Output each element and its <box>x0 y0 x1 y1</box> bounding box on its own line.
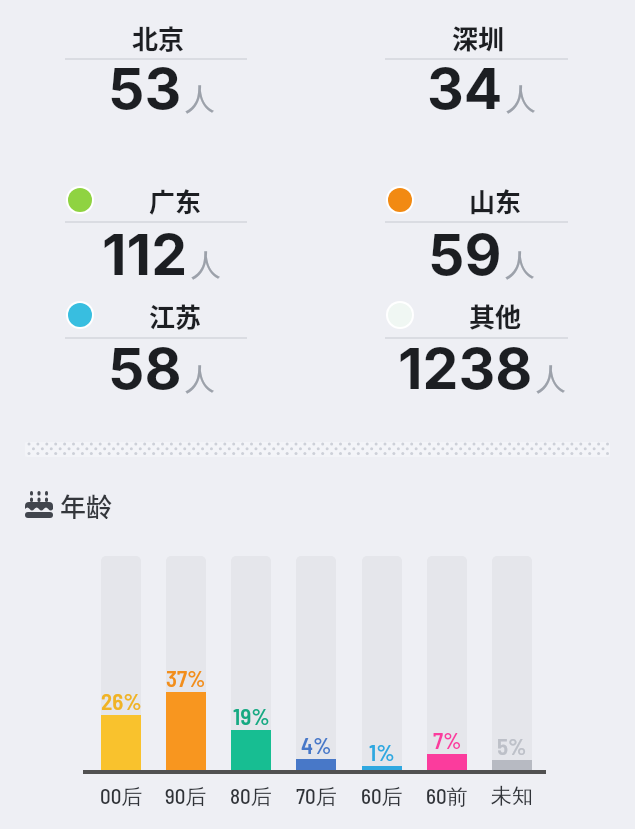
button[interactable]: 未知 <box>479 782 545 810</box>
staticText: 人 <box>506 80 536 118</box>
staticText: 53 <box>108 54 182 123</box>
staticText: 人 <box>185 360 215 398</box>
staticText: 37% <box>166 664 206 692</box>
button[interactable]: 江苏 <box>84 297 266 333</box>
button[interactable]: 山东 <box>404 182 587 218</box>
button[interactable]: 年龄 <box>60 487 120 519</box>
staticText: 58 <box>108 334 182 403</box>
button[interactable]: 70后 <box>283 782 349 810</box>
staticText: 00后 <box>100 783 143 810</box>
staticText: 5% <box>497 732 527 760</box>
button[interactable]: 广东 <box>84 182 266 218</box>
button[interactable]: 80后 <box>218 782 284 810</box>
staticText: 年龄 <box>60 487 113 519</box>
staticText: 59 <box>428 220 502 289</box>
button[interactable]: 深圳 <box>387 19 570 55</box>
staticText: 人 <box>536 360 566 398</box>
button[interactable]: 00后 <box>88 782 154 810</box>
staticText: 90后 <box>165 783 207 810</box>
staticText: 人 <box>185 80 215 118</box>
staticText: 19% <box>233 702 270 730</box>
staticText: 26% <box>101 687 142 715</box>
button[interactable]: 其他 <box>404 297 587 333</box>
staticText: 北京 <box>132 19 185 55</box>
staticText: 其他 <box>469 297 522 333</box>
staticText: 60后 <box>361 783 403 810</box>
button[interactable]: 60后 <box>349 782 415 810</box>
button[interactable]: 60前 <box>414 782 480 810</box>
staticText: 70后 <box>296 783 337 810</box>
staticText: 江苏 <box>149 297 202 333</box>
staticText: 人 <box>191 246 221 284</box>
staticText: 1238 <box>398 334 533 403</box>
staticText: 广东 <box>149 182 202 218</box>
staticText: 80后 <box>230 783 272 810</box>
staticText: 山东 <box>469 182 522 218</box>
staticText: 1% <box>369 738 395 766</box>
staticText: 112 <box>102 220 188 289</box>
staticText: 4% <box>301 731 332 759</box>
button[interactable]: 90后 <box>153 782 219 810</box>
staticText: 人 <box>505 246 535 284</box>
staticText: 深圳 <box>452 19 505 55</box>
staticText: 7% <box>433 726 462 754</box>
button[interactable]: 北京 <box>67 19 249 55</box>
staticText: 34 <box>427 54 503 123</box>
staticText: 60前 <box>426 783 468 810</box>
staticText: 未知 <box>491 783 533 809</box>
